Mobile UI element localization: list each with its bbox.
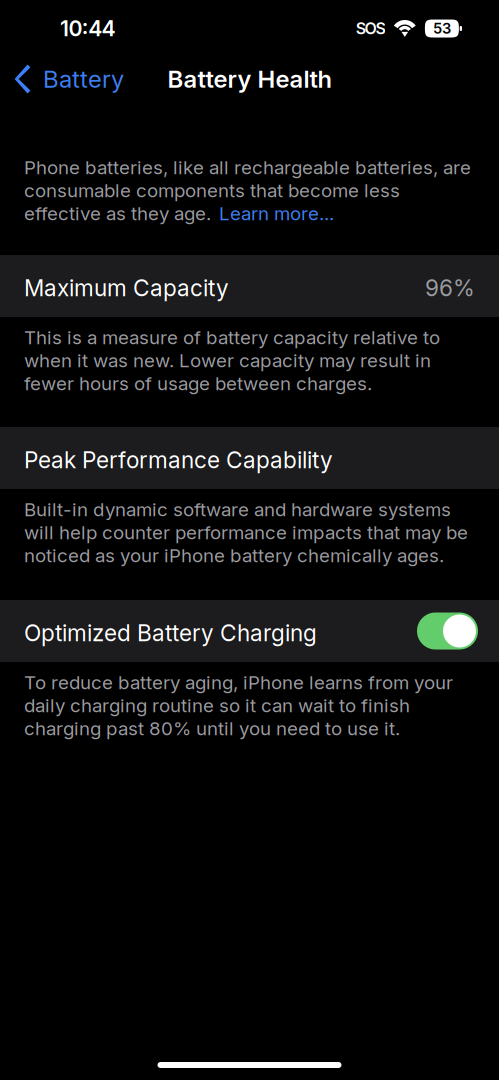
staticText: SOS <box>356 19 385 38</box>
button[interactable]: Maximum Capacity <box>0 255 499 317</box>
staticText: noticed as your iPhone battery chemicall… <box>24 544 444 567</box>
button[interactable]: Learn more... <box>219 202 334 225</box>
staticText: charging past 80% until you need to use … <box>24 717 400 740</box>
staticText: 96% <box>425 274 475 302</box>
staticText: Battery Health <box>167 64 331 93</box>
staticText: consumable components that become less <box>24 179 400 202</box>
staticText: effective as they age. <box>24 202 211 225</box>
staticText: will help counter performance impacts th… <box>24 521 468 544</box>
staticText: fewer hours of usage between charges. <box>24 372 372 395</box>
staticText: Learn more... <box>219 202 334 225</box>
staticText: Optimized Battery Charging <box>24 619 317 647</box>
staticText: Maximum Capacity <box>24 274 229 302</box>
staticText: This is a measure of battery capacity re… <box>24 326 440 349</box>
staticText: 53 <box>433 20 451 37</box>
button[interactable]: Optimized Battery Charging <box>0 600 499 662</box>
button[interactable]: Peak Performance Capability <box>0 427 499 489</box>
staticText: daily charging routine so it can wait to… <box>24 694 410 717</box>
staticText: 10:44 <box>60 16 116 41</box>
staticText: Built-in dynamic software and hardware s… <box>24 498 451 521</box>
staticText: Phone batteries, like all rechargeable b… <box>24 156 471 179</box>
staticText: Battery <box>43 64 124 93</box>
button[interactable]: Battery <box>0 57 136 101</box>
staticText: To reduce battery aging, iPhone learns f… <box>24 671 453 694</box>
staticText: Peak Performance Capability <box>24 446 333 474</box>
staticText: when it was new. Lower capacity may resu… <box>24 349 431 372</box>
